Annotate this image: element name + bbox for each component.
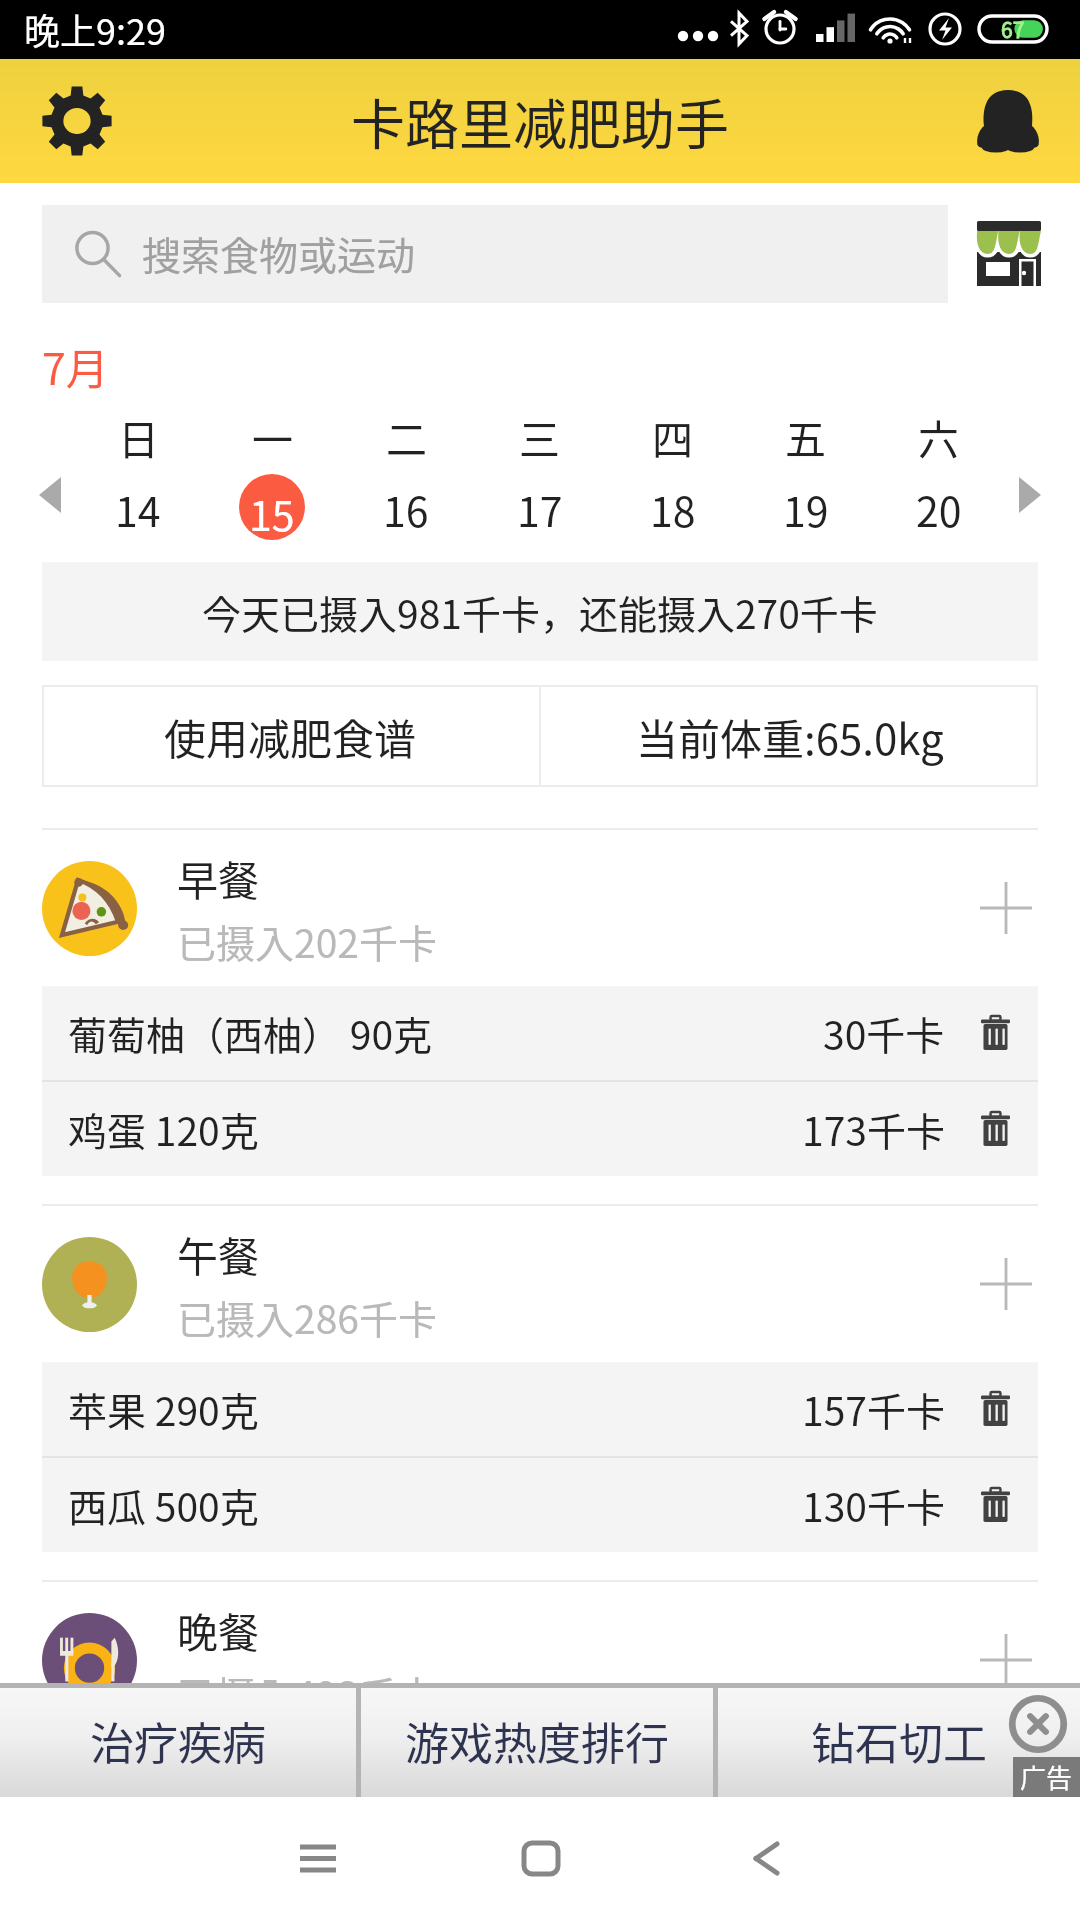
button[interactable]: Delete [973, 1107, 1017, 1151]
button[interactable]: 搜索食物或运动 [42, 205, 948, 303]
button[interactable]: 苹果 290克 [42, 1362, 1038, 1456]
staticText: 16 [383, 479, 429, 533]
button[interactable]: 午餐 [42, 1206, 1038, 1362]
button[interactable]: 17 [473, 461, 606, 533]
staticText: 30千卡 [823, 1005, 945, 1061]
staticText: 治疗疾病 [90, 1709, 266, 1773]
button[interactable]: 使用减肥食谱 [42, 685, 539, 787]
staticText: 卡路里减肥助手 [351, 82, 729, 160]
button[interactable]: 15 [205, 461, 339, 533]
staticText: 已摄入286千卡 [177, 1289, 437, 1345]
staticText: 二 [386, 407, 427, 461]
staticText: 游戏热度排行 [405, 1709, 669, 1773]
button[interactable]: 7月 [42, 335, 109, 397]
staticText: 当前体重:65.0kg [636, 706, 944, 767]
staticText: 18 [650, 479, 696, 533]
staticText: 早餐 [177, 848, 259, 907]
staticText: 157千卡 [802, 1381, 945, 1437]
button[interactable]: 葡萄柚（西柚） 90克 [42, 986, 1038, 1080]
staticText: 日 [118, 407, 159, 461]
button[interactable]: Home [493, 1811, 588, 1906]
button[interactable]: 鸡蛋 120克 [42, 1082, 1038, 1176]
button[interactable]: 20 [872, 461, 1005, 533]
button[interactable]: 晚餐 [42, 1582, 1038, 1738]
staticText: 四 [652, 407, 693, 461]
button[interactable]: 当前体重:65.0kg [541, 685, 1038, 787]
button[interactable]: Delete [973, 1483, 1017, 1527]
button[interactable]: 西瓜 500克 [42, 1458, 1038, 1552]
staticText: 西瓜 500克 [68, 1477, 802, 1533]
staticText: 一 [252, 407, 293, 461]
staticText: 搜索食物或运动 [142, 225, 416, 281]
staticText: 14 [115, 479, 161, 533]
staticText: 已摄入493千卡 [177, 1665, 437, 1721]
button[interactable]: Store [964, 209, 1054, 299]
button[interactable]: Delete [973, 1011, 1017, 1055]
staticText: 173千卡 [802, 1101, 945, 1157]
button[interactable]: Close ad [1008, 1694, 1068, 1754]
button[interactable]: Add food [974, 1252, 1038, 1316]
staticText: 67 [1001, 14, 1025, 44]
staticText: 17 [517, 479, 563, 533]
button[interactable]: Settings [31, 75, 123, 167]
staticText: 苹果 290克 [68, 1381, 802, 1437]
staticText: 三 [519, 407, 560, 461]
button[interactable]: Profile [960, 73, 1056, 169]
staticText: 六 [918, 407, 959, 461]
button[interactable]: 治疗疾病 [0, 1688, 356, 1797]
staticText: 广告 [1020, 1758, 1073, 1796]
staticText: 葡萄柚（西柚） 90克 [68, 1005, 823, 1061]
button[interactable]: Next week [1002, 467, 1058, 523]
staticText: 五 [785, 407, 826, 461]
staticText: 钻石切工 [811, 1709, 987, 1773]
button[interactable]: Add food [974, 1628, 1038, 1692]
staticText: 7月 [42, 335, 109, 397]
staticText: 20 [916, 479, 962, 533]
button[interactable]: 16 [339, 461, 473, 533]
button[interactable]: 19 [739, 461, 872, 533]
button[interactable]: 14 [71, 461, 205, 533]
button[interactable]: 早餐 [42, 830, 1038, 986]
button[interactable]: Back [719, 1811, 814, 1906]
button[interactable]: 游戏热度排行 [361, 1688, 713, 1797]
staticText: 今天已摄入981千卡，还能摄入270千卡 [202, 584, 878, 640]
button[interactable]: Add food [974, 876, 1038, 940]
button[interactable]: 18 [606, 461, 739, 533]
staticText: 15 [249, 483, 295, 540]
button[interactable]: 钻石切工 [718, 1688, 1080, 1797]
staticText: 使用减肥食谱 [164, 706, 417, 767]
button[interactable]: Recent apps [270, 1811, 365, 1906]
button[interactable]: Previous week [22, 467, 78, 523]
staticText: 已摄入202千卡 [177, 913, 437, 969]
staticText: 晚上9:29 [24, 3, 166, 55]
button[interactable]: Delete [973, 1387, 1017, 1431]
staticText: 130千卡 [802, 1477, 945, 1533]
staticText: 午餐 [177, 1224, 259, 1283]
staticText: 鸡蛋 120克 [68, 1101, 802, 1157]
staticText: 晚餐 [177, 1600, 259, 1659]
staticText: 19 [783, 479, 829, 533]
